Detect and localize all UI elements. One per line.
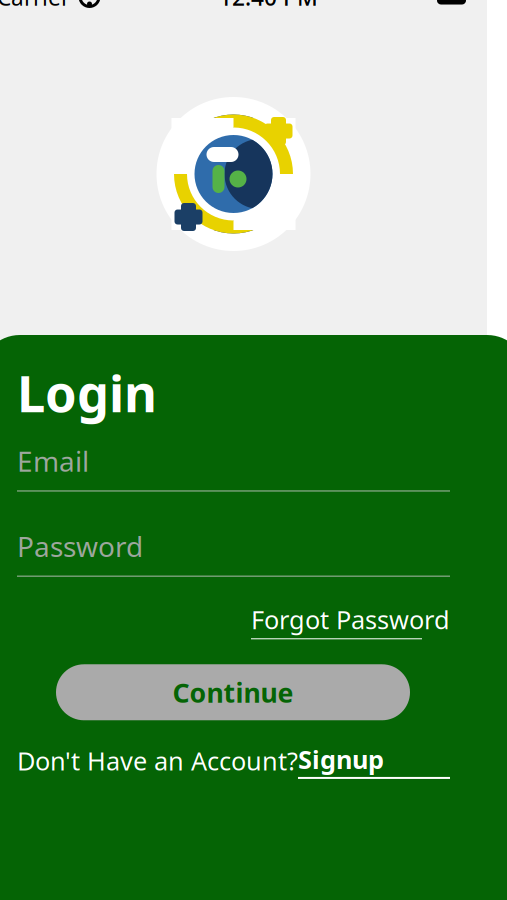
button[interactable]: Forgot Password — [251, 603, 450, 639]
staticText: Signup — [298, 742, 384, 776]
button[interactable]: Continue — [56, 664, 410, 720]
staticText: Don't Have an Account? — [17, 744, 298, 777]
staticText: Carrier — [0, 0, 70, 12]
staticText: Password — [17, 527, 143, 565]
staticText: Forgot Password — [251, 603, 450, 636]
staticText: Email — [17, 442, 89, 479]
staticText: Login — [17, 359, 157, 426]
staticText: 12:40 PM — [219, 0, 318, 12]
button[interactable]: Don't Have an Account? — [17, 742, 450, 779]
staticText: Continue — [172, 675, 293, 710]
